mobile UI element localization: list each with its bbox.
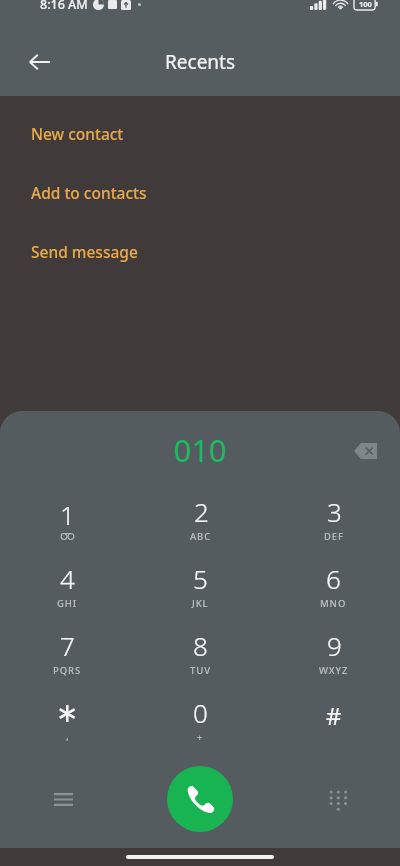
button[interactable]: 6: [267, 554, 400, 621]
button[interactable]: Backspace: [342, 428, 388, 474]
button[interactable]: #: [267, 688, 400, 755]
button[interactable]: 4: [0, 554, 134, 621]
staticText: 0: [193, 695, 208, 730]
staticText: 1: [60, 497, 75, 532]
button[interactable]: ∗: [0, 688, 134, 755]
staticText: ∗: [56, 697, 79, 728]
staticText: DEF: [324, 530, 344, 543]
staticText: TUV: [190, 664, 211, 677]
button[interactable]: Back: [18, 40, 62, 84]
button[interactable]: Call: [167, 766, 233, 832]
staticText: Send message: [31, 241, 138, 262]
staticText: 8:16 AM: [40, 0, 88, 13]
staticText: Add to contacts: [31, 182, 147, 203]
staticText: 8: [193, 628, 208, 663]
staticText: 4: [60, 561, 75, 596]
staticText: +: [197, 731, 204, 744]
button[interactable]: Send message: [0, 229, 400, 273]
button[interactable]: Add to contacts: [0, 170, 400, 214]
staticText: PQRS: [53, 664, 82, 677]
staticText: 7: [60, 628, 75, 663]
button[interactable]: 3: [267, 487, 400, 554]
staticText: New contact: [31, 123, 124, 144]
staticText: 5: [193, 561, 208, 596]
staticText: Recents: [165, 49, 236, 75]
staticText: 100: [359, 0, 372, 9]
button[interactable]: 2: [134, 487, 267, 554]
button[interactable]: Dialpad: [314, 776, 360, 822]
button[interactable]: 0: [134, 688, 267, 755]
button[interactable]: More options: [40, 776, 86, 822]
staticText: 3: [327, 494, 342, 529]
button[interactable]: 7: [0, 621, 134, 688]
button[interactable]: 5: [134, 554, 267, 621]
button[interactable]: 1: [0, 487, 134, 554]
staticText: 010: [173, 429, 227, 471]
staticText: GHI: [57, 597, 78, 610]
staticText: 2: [194, 494, 209, 529]
staticText: JKL: [192, 597, 209, 610]
staticText: ,: [66, 729, 69, 743]
staticText: 6: [326, 561, 341, 596]
staticText: WXYZ: [319, 664, 349, 677]
staticText: ABC: [190, 530, 212, 543]
staticText: MNO: [320, 597, 347, 610]
button[interactable]: New contact: [0, 111, 400, 155]
button[interactable]: 9: [267, 621, 400, 688]
staticText: 9: [327, 628, 342, 663]
staticText: #: [326, 699, 342, 732]
button[interactable]: 8: [134, 621, 267, 688]
